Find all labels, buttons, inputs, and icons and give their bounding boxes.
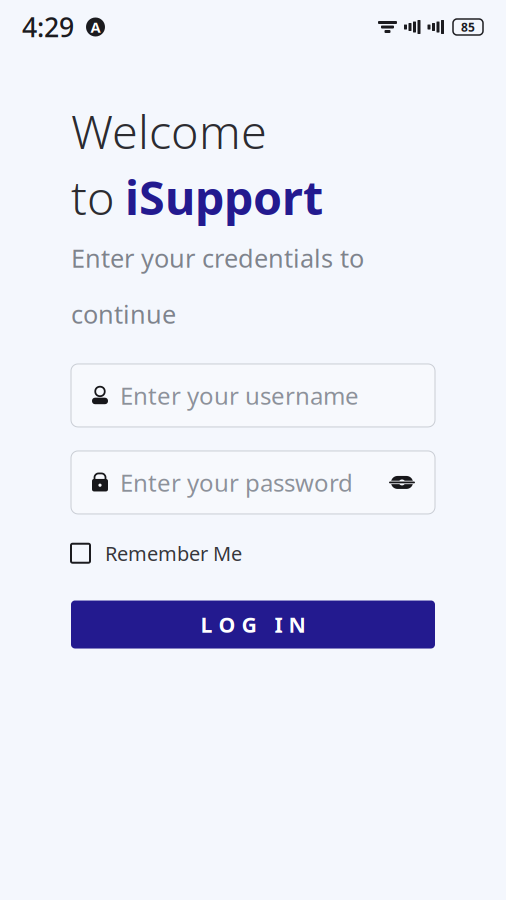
button[interactable]: Remember Me [71, 534, 242, 572]
staticText: to [71, 166, 115, 228]
staticText: continue [71, 297, 176, 331]
staticText: Enter your username [120, 379, 359, 411]
staticText: 85 [461, 19, 475, 35]
staticText: iSupport [125, 166, 323, 228]
staticText: Enter your credentials to [71, 241, 364, 275]
staticText: Enter your password [120, 466, 353, 498]
staticText: Remember Me [105, 540, 242, 566]
staticText: 4:29 [22, 9, 74, 45]
staticText: L O G I N [200, 610, 305, 639]
button[interactable]: L O G I N [71, 600, 435, 648]
staticText: Welcome [71, 100, 267, 162]
staticText: A [90, 17, 100, 37]
button[interactable]: Show password [387, 469, 435, 495]
button[interactable]: Enter your username [71, 364, 435, 427]
